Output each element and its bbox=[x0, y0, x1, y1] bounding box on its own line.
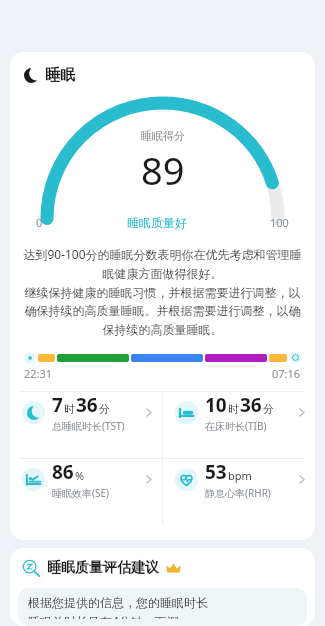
staticText: 86 bbox=[52, 459, 74, 485]
staticText: bpm bbox=[228, 468, 252, 483]
staticText: 0 bbox=[36, 215, 43, 230]
staticText: 时 bbox=[228, 402, 239, 416]
staticText: 睡眠效率(SE) bbox=[52, 486, 110, 500]
staticText: 睡眠 bbox=[45, 66, 75, 85]
button[interactable]: 10 bbox=[163, 392, 315, 433]
staticText: 在床时长(TIB) bbox=[205, 419, 267, 433]
staticText: 36 bbox=[76, 392, 98, 418]
staticText: 睡眠得分 bbox=[141, 129, 185, 143]
staticText: 睡眠质量好 bbox=[127, 215, 187, 230]
staticText: 总睡眠时长(TST) bbox=[52, 419, 125, 433]
staticText: % bbox=[75, 468, 85, 483]
staticText: 静息心率(RHR) bbox=[205, 486, 271, 500]
staticText: 100 bbox=[270, 215, 289, 230]
staticText: 达到90-100分的睡眠分数表明你在优先考虑和管理睡眠健康方面做得很好。 bbox=[20, 246, 305, 282]
button[interactable]: 睡眠质量评估建议 bbox=[10, 548, 315, 579]
other: 详情 bbox=[296, 474, 307, 485]
staticText: 根据您提供的信息，您的睡眠时长 睡眠总时长只有4分钟，而深 bbox=[28, 595, 208, 619]
button[interactable]: 53 bbox=[163, 459, 315, 500]
staticText: 89 bbox=[141, 144, 185, 196]
button[interactable]: 7 bbox=[10, 392, 162, 433]
staticText: 07:16 bbox=[272, 366, 301, 381]
other: 详情 bbox=[296, 407, 307, 418]
other: 详情 bbox=[143, 474, 154, 485]
staticText: 分 bbox=[263, 402, 274, 416]
staticText: 分 bbox=[99, 402, 110, 416]
staticText: 7 bbox=[52, 392, 63, 418]
staticText: 53 bbox=[205, 459, 227, 485]
button[interactable]: 睡眠 bbox=[10, 52, 315, 87]
other: 详情 bbox=[143, 407, 154, 418]
button[interactable]: 86 bbox=[10, 459, 162, 500]
staticText: 10 bbox=[205, 392, 227, 418]
staticText: 36 bbox=[240, 392, 262, 418]
staticText: 睡眠质量评估建议 bbox=[47, 559, 159, 577]
staticText: 继续保持健康的睡眠习惯，并根据需要进行调整，以确保持续的高质量睡眠。并根据需要进… bbox=[20, 285, 305, 338]
staticText: 时 bbox=[64, 402, 75, 416]
staticText: 22:31 bbox=[24, 366, 53, 381]
